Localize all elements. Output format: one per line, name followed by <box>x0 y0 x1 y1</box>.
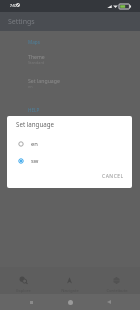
staticText: en <box>31 140 38 148</box>
staticText: 7:57 <box>10 3 17 8</box>
staticText: Theme <box>28 53 45 60</box>
staticText: Standard <box>28 60 45 65</box>
staticText: HELP <box>28 107 40 113</box>
button[interactable]: Theme <box>0 53 140 69</box>
button[interactable]: Settings <box>0 12 140 31</box>
staticText: Set language <box>28 77 60 84</box>
staticText: en <box>28 84 33 89</box>
button[interactable]: Recents <box>23 294 39 310</box>
button[interactable]: en <box>7 137 132 151</box>
button[interactable]: Home <box>62 294 78 310</box>
staticText: Settings <box>8 17 35 27</box>
button[interactable]: CANCEL <box>97 170 129 183</box>
staticText: CANCEL <box>102 173 124 180</box>
staticText: Set language <box>16 120 55 128</box>
staticText: Maps <box>28 39 40 45</box>
button[interactable]: sw <box>7 154 132 168</box>
button[interactable]: Set language <box>0 77 140 93</box>
staticText: sw <box>31 157 39 165</box>
button[interactable]: Back <box>101 294 117 310</box>
